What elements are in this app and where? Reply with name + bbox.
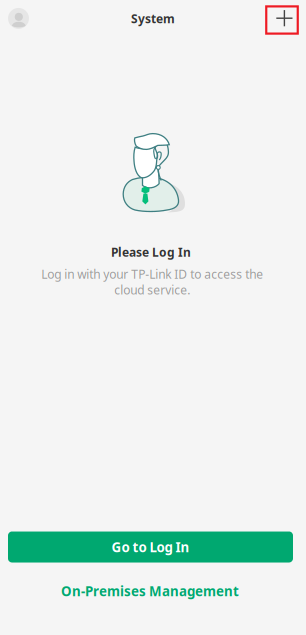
button[interactable]: On-Premises Management	[20, 579, 280, 603]
button[interactable]: Add	[266, 6, 298, 34]
button[interactable]: Account	[3, 3, 33, 33]
staticText: Go to Log In	[111, 538, 189, 556]
button[interactable]: Go to Log In	[8, 531, 293, 562]
staticText: Log in with your TP-Link ID to access th…	[41, 266, 263, 298]
staticText: Please Log In	[111, 244, 191, 260]
staticText: System	[131, 10, 175, 26]
staticText: On-Premises Management	[61, 582, 239, 600]
